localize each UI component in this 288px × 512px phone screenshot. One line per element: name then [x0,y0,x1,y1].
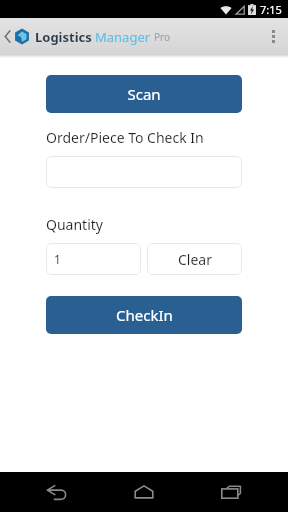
button[interactable]: 1 [46,243,141,275]
button[interactable]: Back [27,472,87,512]
button[interactable]: Scan [46,75,242,113]
staticText: CheckIn [116,305,173,325]
staticText: Scan [127,84,161,104]
staticText: Pro [154,30,171,44]
button[interactable]: More options [258,18,288,55]
staticText: Quantity [46,215,103,234]
staticText: Clear [178,250,212,269]
button[interactable] [46,156,242,188]
staticText: 7:15 [260,2,282,17]
staticText: Manager [95,28,151,46]
staticText: Order/Piece To Check In [46,128,204,147]
button[interactable]: Logistics [0,18,179,55]
staticText: Logistics [35,28,92,46]
staticText: 1 [54,251,61,267]
button[interactable]: Home [114,472,174,512]
button[interactable]: CheckIn [46,296,242,334]
button[interactable]: Clear [147,243,242,275]
button[interactable]: Recent apps [201,472,261,512]
